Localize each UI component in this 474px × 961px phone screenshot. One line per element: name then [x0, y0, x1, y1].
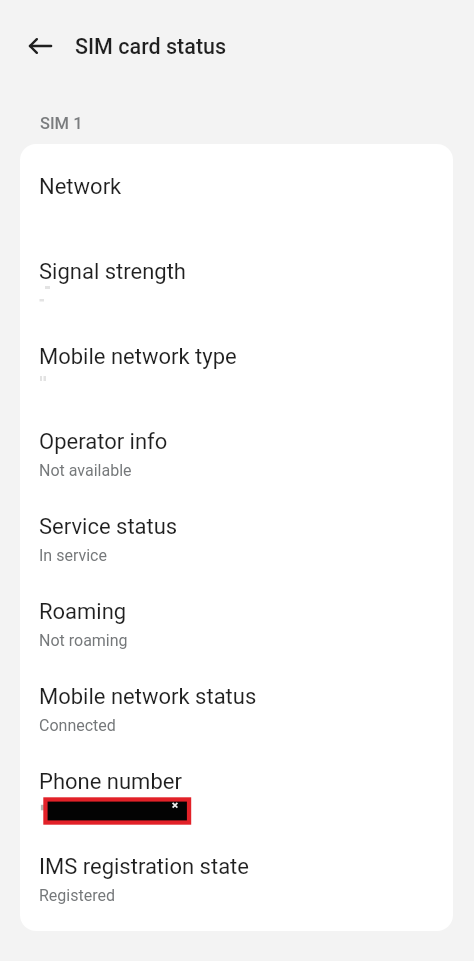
staticText: Not roaming — [39, 631, 128, 650]
staticText: Operator info — [39, 429, 168, 455]
staticText: In service — [39, 546, 107, 565]
button[interactable]: Network — [20, 174, 453, 259]
staticText: Service status — [39, 514, 178, 540]
button[interactable]: Back — [17, 28, 53, 64]
staticText: SIM 1 — [40, 114, 83, 133]
staticText: Roaming — [39, 599, 127, 625]
button[interactable]: Roaming — [20, 599, 453, 684]
button[interactable]: Phone number — [20, 769, 453, 854]
button[interactable]: Mobile network status — [20, 684, 453, 769]
button[interactable]: Signal strength — [20, 259, 453, 344]
staticText: Phone number — [39, 769, 182, 795]
button[interactable]: Operator info — [20, 429, 453, 514]
button[interactable]: Service status — [20, 514, 453, 599]
staticText: Registered — [39, 886, 115, 905]
button[interactable]: IMS registration state — [20, 854, 453, 931]
staticText: IMS registration state — [39, 854, 249, 880]
staticText: Connected — [39, 716, 116, 735]
staticText: Mobile network type — [39, 344, 237, 370]
staticText: Not available — [39, 461, 132, 480]
staticText: Network — [39, 174, 122, 200]
button[interactable]: Mobile network type — [20, 344, 453, 429]
staticText: Mobile network status — [39, 684, 257, 710]
staticText: SIM card status — [75, 34, 227, 59]
staticText: Signal strength — [39, 259, 186, 285]
